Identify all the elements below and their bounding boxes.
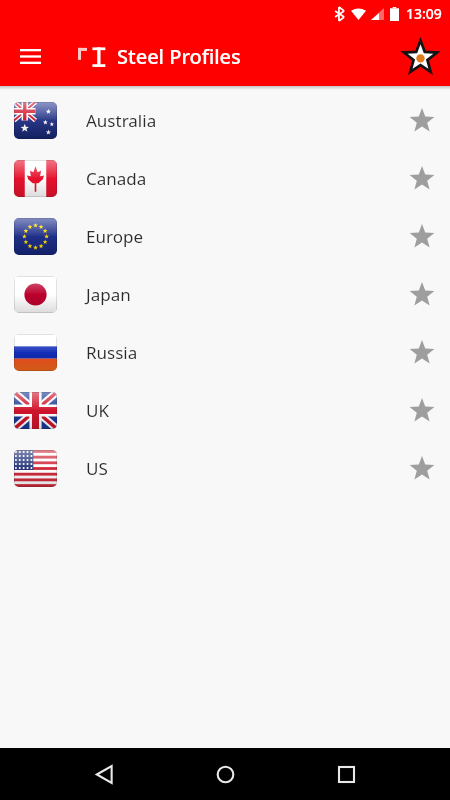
staticText: Russia xyxy=(86,341,394,364)
staticText: 13:09 xyxy=(406,4,442,23)
button[interactable]: Russia xyxy=(0,323,450,381)
staticText: UK xyxy=(86,399,394,422)
button[interactable]: US xyxy=(0,439,450,497)
button[interactable]: Recent apps xyxy=(322,750,370,798)
button[interactable]: Europe xyxy=(0,207,450,265)
button[interactable]: Japan xyxy=(0,265,450,323)
staticText: Australia xyxy=(86,109,394,132)
button[interactable]: Australia xyxy=(0,91,450,149)
button[interactable]: Canada xyxy=(0,149,450,207)
button[interactable]: Favourite Canada xyxy=(394,150,450,206)
button[interactable]: Home xyxy=(201,750,249,798)
button[interactable]: Favourite Europe xyxy=(394,208,450,264)
button[interactable]: Favourites xyxy=(396,32,444,80)
staticText: Japan xyxy=(86,283,394,306)
staticText: Europe xyxy=(86,225,394,248)
staticText: US xyxy=(86,457,394,480)
button[interactable]: UK xyxy=(0,381,450,439)
button[interactable]: Favourite US xyxy=(394,440,450,496)
staticText: Steel Profiles xyxy=(117,43,241,70)
button[interactable]: Favourite UK xyxy=(394,382,450,438)
button[interactable]: Back xyxy=(80,750,128,798)
staticText: Canada xyxy=(86,167,394,190)
button[interactable]: Favourite Japan xyxy=(394,266,450,322)
button[interactable]: Favourite Australia xyxy=(394,92,450,148)
button[interactable]: Open navigation menu xyxy=(6,32,54,80)
button[interactable]: Favourite Russia xyxy=(394,324,450,380)
